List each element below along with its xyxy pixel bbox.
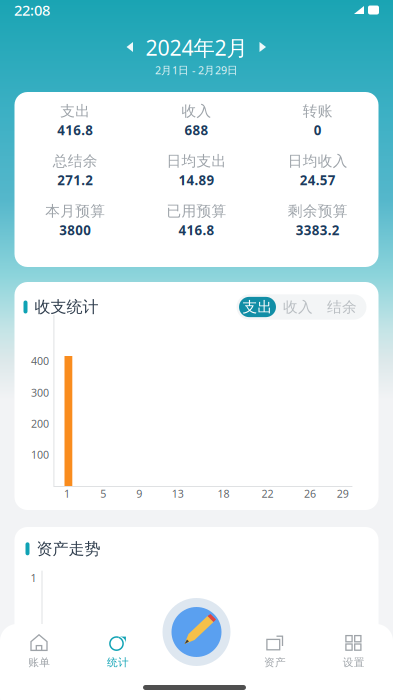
button[interactable]: 支出 bbox=[239, 297, 276, 317]
button[interactable]: Add record bbox=[161, 597, 231, 667]
staticText: 22 bbox=[261, 486, 273, 501]
staticText: 剩余预算 bbox=[288, 202, 348, 220]
staticText: 设置 bbox=[343, 656, 365, 669]
staticText: 支出 bbox=[60, 102, 90, 120]
staticText: 资产走势 bbox=[36, 539, 100, 559]
staticText: 2024年2月 bbox=[145, 33, 247, 62]
button[interactable]: Previous month bbox=[126, 42, 133, 53]
staticText: 13 bbox=[172, 486, 184, 501]
button[interactable]: 设置 bbox=[314, 634, 393, 668]
staticText: 14.89 bbox=[178, 171, 214, 189]
staticText: 416.8 bbox=[57, 121, 93, 139]
staticText: 3383.2 bbox=[296, 221, 340, 239]
button[interactable]: Next month bbox=[259, 42, 266, 53]
staticText: 日均收入 bbox=[288, 152, 348, 170]
button[interactable]: 资产 bbox=[236, 634, 314, 668]
staticText: 收支统计 bbox=[34, 297, 98, 317]
staticText: 18 bbox=[217, 486, 229, 501]
button[interactable]: 结余 bbox=[320, 297, 364, 317]
staticText: 日均支出 bbox=[166, 152, 226, 170]
staticText: 26 bbox=[304, 486, 316, 501]
button[interactable]: 收入 bbox=[276, 297, 320, 317]
button[interactable]: 账单 bbox=[0, 634, 79, 668]
staticText: 400 bbox=[31, 354, 49, 368]
staticText: 1 bbox=[30, 571, 36, 585]
staticText: 9 bbox=[136, 486, 142, 501]
staticText: 3800 bbox=[59, 221, 91, 239]
staticText: 结余 bbox=[327, 298, 357, 316]
staticText: 22:08 bbox=[14, 0, 50, 20]
staticText: 已用预算 bbox=[166, 202, 226, 220]
staticText: 转账 bbox=[303, 102, 333, 120]
staticText: 总结余 bbox=[53, 152, 98, 170]
button[interactable]: 统计 bbox=[79, 634, 157, 668]
staticText: 416.8 bbox=[178, 221, 214, 239]
staticText: 账单 bbox=[28, 656, 50, 669]
staticText: 0 bbox=[314, 121, 322, 139]
staticText: 2月1日 - 2月29日 bbox=[155, 63, 238, 77]
staticText: 24.57 bbox=[300, 171, 336, 189]
staticText: 收入 bbox=[283, 298, 313, 316]
staticText: 支出 bbox=[242, 298, 272, 316]
staticText: 300 bbox=[31, 385, 49, 400]
staticText: 100 bbox=[31, 447, 49, 462]
staticText: 200 bbox=[31, 417, 49, 431]
staticText: 资产 bbox=[264, 656, 286, 669]
staticText: 271.2 bbox=[57, 171, 93, 189]
staticText: 本月预算 bbox=[45, 202, 105, 220]
staticText: 1 bbox=[64, 486, 70, 501]
staticText: 688 bbox=[184, 121, 208, 139]
staticText: 5 bbox=[100, 486, 106, 501]
staticText: 29 bbox=[337, 486, 349, 501]
staticText: 收入 bbox=[181, 102, 211, 120]
staticText: 统计 bbox=[107, 656, 129, 669]
